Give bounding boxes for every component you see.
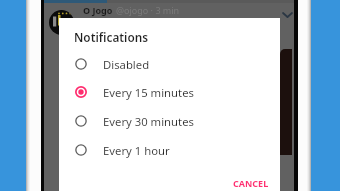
staticText: CANCEL — [233, 177, 269, 189]
button[interactable]: CANCEL — [227, 172, 275, 191]
button[interactable]: Every 30 minutes — [59, 107, 280, 135]
staticText: Every 15 minutes — [103, 85, 194, 100]
staticText: Every 1 hour — [103, 143, 170, 158]
button[interactable]: Every 1 hour — [59, 136, 280, 164]
button[interactable]: More options — [281, 8, 296, 21]
staticText: Every 30 minutes — [103, 114, 194, 129]
staticText: O Jogo — [83, 4, 113, 16]
button[interactable]: Every 15 minutes — [59, 78, 280, 106]
staticText: @ojogo · 3 min — [116, 4, 180, 16]
staticText: Disabled — [103, 57, 150, 72]
button[interactable]: Disabled — [59, 50, 280, 78]
staticText: Notifications — [74, 29, 149, 45]
